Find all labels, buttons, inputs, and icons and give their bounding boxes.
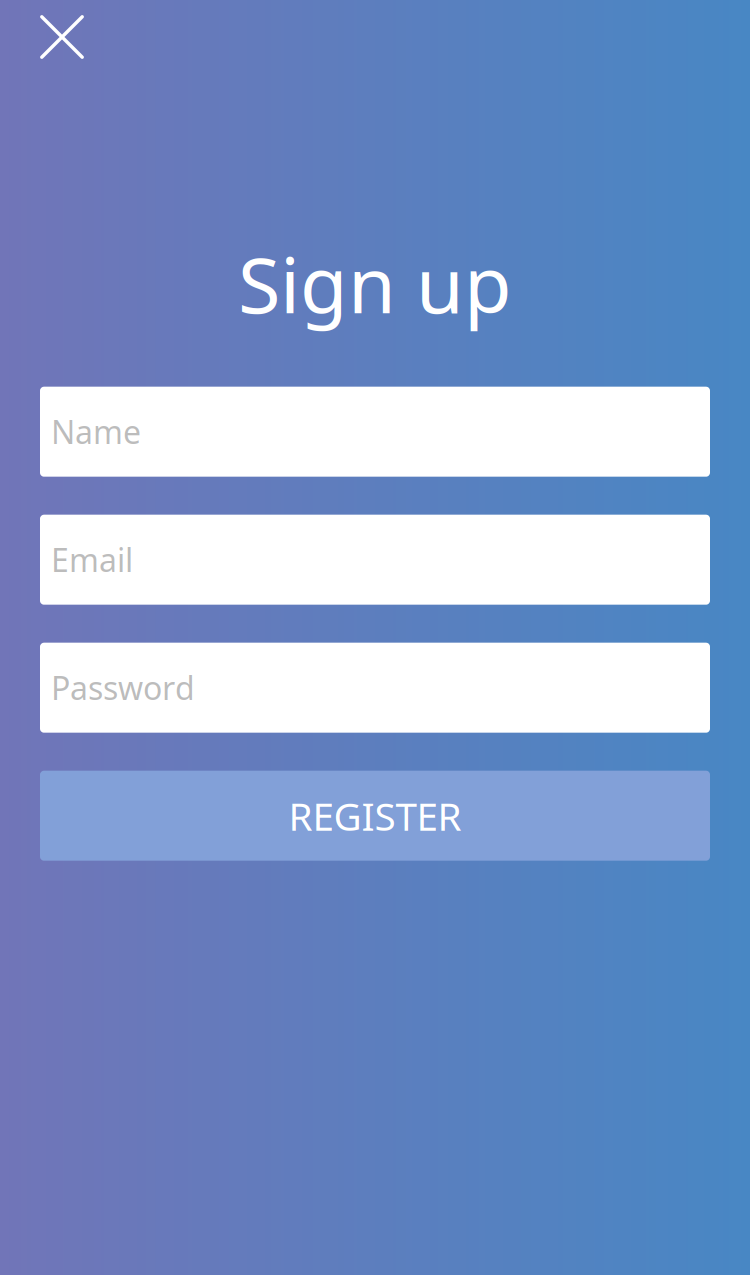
staticText: Name [51,410,141,453]
button[interactable]: Email [40,515,710,605]
staticText: Password [51,666,195,709]
button[interactable]: REGISTER [40,771,710,861]
staticText: Sign up [238,232,512,335]
button[interactable]: Name [40,387,710,477]
button[interactable]: Close [40,15,84,59]
button[interactable]: Password [40,643,710,733]
staticText: Email [51,538,133,581]
staticText: REGISTER [288,790,461,841]
